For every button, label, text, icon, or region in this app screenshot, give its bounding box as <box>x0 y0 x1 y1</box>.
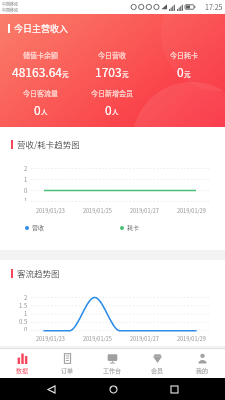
staticText: 今日耗卡 <box>170 50 198 60</box>
staticText: 2019/01/23 <box>36 207 65 215</box>
staticText: 营收 <box>32 223 45 232</box>
staticText: 中国移动 <box>2 7 18 13</box>
staticText: 营收/耗卡趋势图 <box>17 138 80 150</box>
staticText: 17:25 <box>205 2 223 12</box>
staticText: 工作台 <box>103 366 122 375</box>
staticText: 耗卡 <box>127 223 140 232</box>
staticText: 0.5 <box>19 317 28 325</box>
staticText: 0 <box>34 101 41 118</box>
staticText: 0 <box>24 186 28 195</box>
staticText: 2019/01/25 <box>83 207 112 215</box>
staticText: 1.5 <box>19 301 28 309</box>
staticText: 1703 <box>95 63 122 80</box>
staticText: 2019/01/27 <box>130 335 159 343</box>
staticText: 中国移动 <box>2 1 18 7</box>
staticText: 2019/01/29 <box>177 335 206 343</box>
button[interactable]: Recent apps <box>163 378 185 400</box>
staticText: 元 <box>184 69 191 78</box>
staticText: 元 <box>62 69 69 78</box>
button[interactable]: 我的 <box>180 349 225 378</box>
button[interactable]: 订单 <box>45 349 90 378</box>
staticText: 0 <box>105 101 112 118</box>
button[interactable]: Home <box>102 378 124 400</box>
staticText: 今日新增会员 <box>91 88 133 98</box>
staticText: 会员 <box>151 366 164 375</box>
staticText: 2019/01/25 <box>83 335 112 343</box>
staticText: 客流趋势图 <box>17 267 60 279</box>
staticText: 今日客流量 <box>23 88 58 98</box>
button[interactable]: 工作台 <box>90 349 135 378</box>
staticText: 人 <box>112 107 119 116</box>
staticText: 2019/01/29 <box>177 207 206 215</box>
staticText: 0 <box>177 63 184 80</box>
button[interactable]: Back <box>40 378 62 400</box>
staticText: 今日主营收入 <box>14 22 69 35</box>
button[interactable]: 数据 <box>0 349 45 378</box>
staticText: 人 <box>41 107 48 116</box>
staticText: 数据 <box>16 366 29 375</box>
staticText: 元 <box>122 69 129 78</box>
staticText: 1 <box>24 309 28 317</box>
staticText: -1 <box>22 196 28 201</box>
staticText: 2 <box>24 293 28 301</box>
staticText: 我的 <box>196 366 209 375</box>
staticText: 2019/01/27 <box>130 207 159 215</box>
staticText: 今日营收 <box>98 50 126 60</box>
staticText: 订单 <box>61 366 74 375</box>
staticText: 储值卡余额 <box>23 50 58 60</box>
staticText: 0 <box>24 325 28 331</box>
staticText: 2019/01/23 <box>36 335 65 343</box>
staticText: 2 <box>24 164 28 173</box>
staticText: 1 <box>24 175 28 184</box>
button[interactable]: 会员 <box>135 349 180 378</box>
staticText: 48163.64 <box>12 63 62 80</box>
